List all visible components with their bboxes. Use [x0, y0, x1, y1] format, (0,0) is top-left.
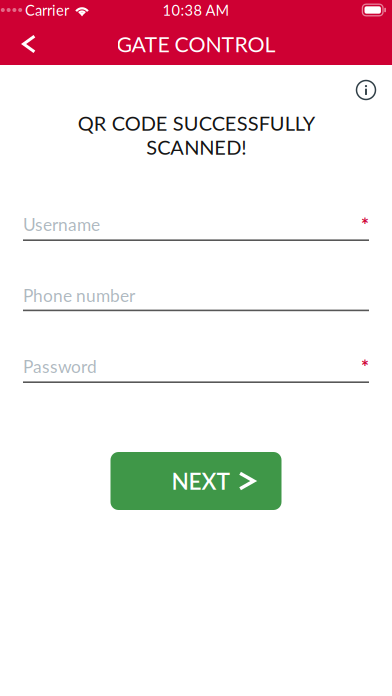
staticText: Password	[23, 356, 97, 377]
staticText: QR CODE SUCCESSFULLY SCANNED!	[77, 111, 314, 159]
staticText: 10:38 AM	[162, 1, 229, 19]
staticText: NEXT	[171, 467, 229, 495]
staticText: *	[361, 213, 369, 235]
staticText: GATE CONTROL	[116, 31, 275, 57]
staticText: Carrier	[25, 1, 69, 19]
staticText: Phone number	[23, 285, 135, 306]
staticText: Username	[23, 214, 100, 235]
staticText: *	[361, 355, 369, 377]
button[interactable]: Information	[349, 74, 383, 106]
button[interactable]: NEXT	[110, 452, 281, 510]
button[interactable]: Back	[0, 20, 58, 65]
